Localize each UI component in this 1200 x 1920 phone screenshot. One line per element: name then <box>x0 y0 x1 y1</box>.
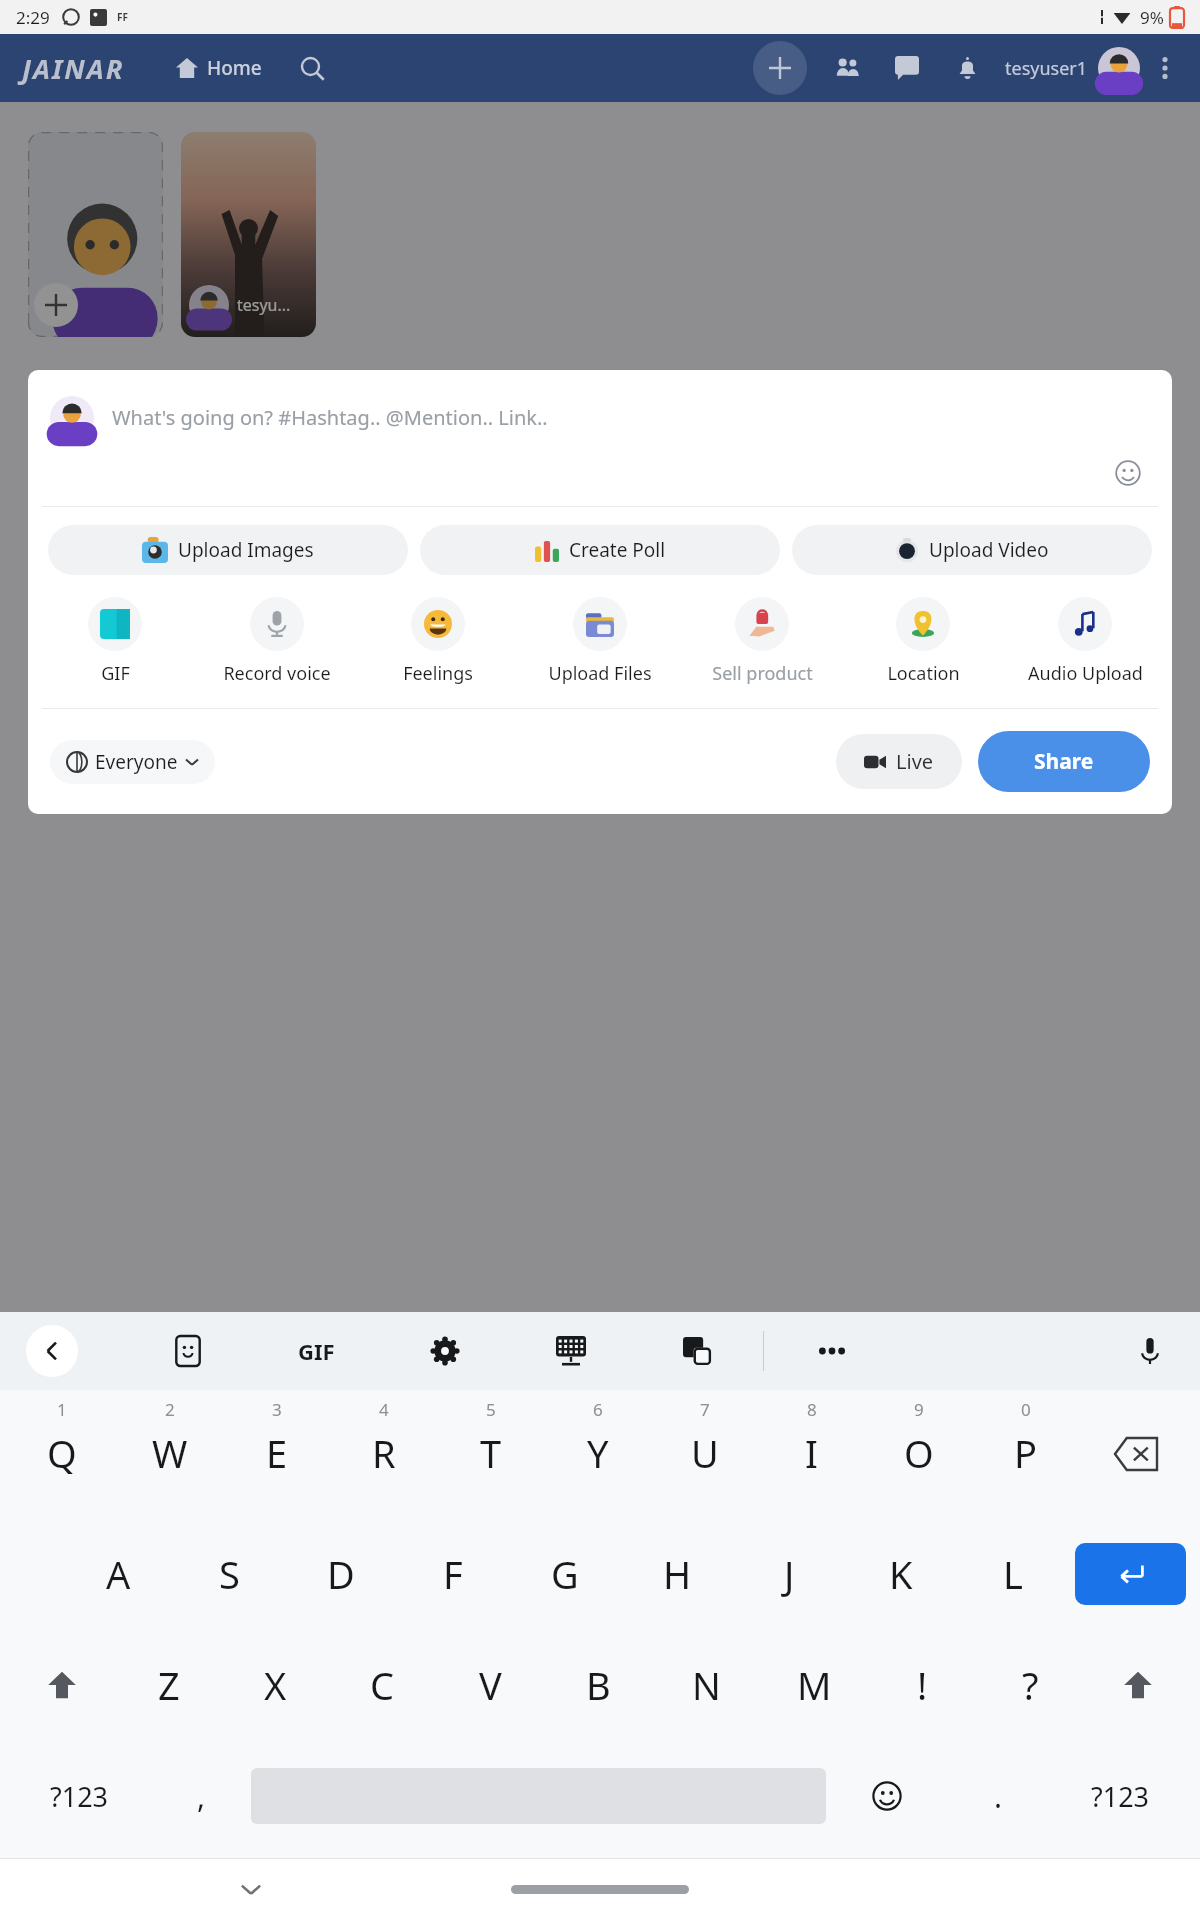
button[interactable]: Z <box>115 1630 222 1740</box>
button[interactable]: H <box>621 1518 733 1630</box>
button[interactable]: Back <box>26 1325 78 1377</box>
button[interactable]: ?123 <box>8 1740 151 1852</box>
staticText: Sell product <box>712 661 813 686</box>
button[interactable]: S <box>174 1518 285 1630</box>
button[interactable]: Stickers <box>164 1327 212 1375</box>
button[interactable]: Share <box>978 731 1150 792</box>
button[interactable]: L <box>957 1518 1069 1630</box>
button[interactable]: Messages <box>885 46 929 90</box>
button[interactable]: Upload Video <box>792 525 1152 575</box>
button[interactable]: 7 <box>651 1390 758 1518</box>
staticText: P <box>1014 1427 1037 1479</box>
staticText: 1 <box>57 1398 67 1421</box>
button[interactable]: What's going on? #Hashtag.. @Mention.. L… <box>50 396 1150 440</box>
staticText: Upload Files <box>548 661 652 686</box>
button[interactable]: F <box>397 1518 509 1630</box>
button[interactable]: 2 <box>116 1390 223 1518</box>
button[interactable]: . <box>948 1740 1048 1852</box>
button[interactable]: Backspace <box>1079 1390 1192 1518</box>
button[interactable]: Home <box>171 49 266 87</box>
staticText: K <box>889 1548 913 1600</box>
staticText: J <box>784 1548 795 1600</box>
button[interactable]: X <box>222 1630 329 1740</box>
button[interactable]: ? <box>976 1630 1084 1740</box>
button[interactable]: 6 <box>544 1390 651 1518</box>
button[interactable]: J <box>733 1518 845 1630</box>
staticText: , <box>197 1776 206 1817</box>
button[interactable]: Upload Files <box>529 593 671 690</box>
button[interactable]: Notifications <box>945 46 989 90</box>
button[interactable]: Shift <box>8 1630 115 1740</box>
staticText: Share <box>1034 747 1094 776</box>
staticText: ! <box>917 1659 928 1711</box>
staticText: ? <box>1022 1659 1039 1711</box>
button[interactable]: Keyboard layout <box>547 1327 595 1375</box>
staticText: E <box>266 1427 288 1479</box>
button[interactable]: Hide keyboard <box>228 1866 274 1912</box>
staticText: GIF <box>101 661 130 686</box>
button[interactable]: tesyuser1 <box>1005 47 1140 89</box>
button[interactable] <box>28 132 163 337</box>
button[interactable]: Audio Upload <box>1014 593 1156 690</box>
button[interactable]: Shift right <box>1084 1630 1192 1740</box>
staticText: 2:29 <box>16 6 50 29</box>
button[interactable]: Feelings <box>367 593 509 690</box>
button[interactable]: 8 <box>758 1390 865 1518</box>
button[interactable]: Friends <box>825 46 869 90</box>
button[interactable]: K <box>845 1518 957 1630</box>
button[interactable]: Translate <box>673 1327 721 1375</box>
button[interactable]: , <box>151 1740 251 1852</box>
button[interactable]: Enter <box>1075 1524 1186 1624</box>
button[interactable]: ! <box>868 1630 976 1740</box>
button[interactable]: Voice input <box>1126 1327 1174 1375</box>
button[interactable]: Emoji <box>826 1740 948 1852</box>
button[interactable]: Create <box>753 41 807 95</box>
staticText: B <box>586 1659 611 1711</box>
button[interactable]: M <box>760 1630 868 1740</box>
staticText: X <box>264 1659 287 1711</box>
staticText: H <box>663 1548 692 1600</box>
button[interactable]: Live <box>836 734 962 789</box>
button[interactable]: A <box>63 1518 174 1630</box>
button[interactable]: 5 <box>437 1390 544 1518</box>
button[interactable]: tesyu... <box>181 132 316 337</box>
button[interactable]: Upload Images <box>48 525 408 575</box>
button[interactable]: Location <box>852 593 994 690</box>
button[interactable]: Home gesture <box>511 1885 689 1894</box>
staticText: Record voice <box>223 661 331 686</box>
button[interactable]: C <box>329 1630 436 1740</box>
staticText: Y <box>587 1427 609 1479</box>
button[interactable]: B <box>544 1630 652 1740</box>
staticText: 4 <box>379 1398 389 1421</box>
staticText: 0 <box>1021 1398 1031 1421</box>
button[interactable]: 0 <box>972 1390 1079 1518</box>
staticText: S <box>219 1548 240 1600</box>
button[interactable]: Record voice <box>206 593 348 690</box>
button[interactable]: JAINAR <box>22 50 125 87</box>
button[interactable]: G <box>509 1518 621 1630</box>
button[interactable]: 9 <box>865 1390 972 1518</box>
button[interactable]: 4 <box>330 1390 437 1518</box>
staticText: 7 <box>700 1398 710 1421</box>
button[interactable]: More options <box>1148 51 1182 85</box>
button[interactable]: Search <box>292 48 332 88</box>
button[interactable]: GIF <box>44 593 186 690</box>
staticText: . <box>994 1776 1003 1817</box>
staticText: M <box>797 1659 832 1711</box>
button[interactable]: V <box>436 1630 544 1740</box>
button[interactable]: Everyone <box>50 740 215 784</box>
button[interactable]: More <box>808 1327 856 1375</box>
button[interactable]: Sell product <box>691 593 833 690</box>
button[interactable]: Emoji <box>1108 453 1148 493</box>
button[interactable]: ?123 <box>1048 1740 1192 1852</box>
button[interactable]: 3 <box>223 1390 330 1518</box>
button[interactable]: Create Poll <box>420 525 780 575</box>
button[interactable]: GIF <box>290 1328 343 1374</box>
button[interactable]: D <box>285 1518 397 1630</box>
button[interactable]: N <box>652 1630 760 1740</box>
button[interactable]: Settings <box>421 1327 469 1375</box>
staticText: Audio Upload <box>1028 661 1143 686</box>
staticText: Feelings <box>403 661 473 686</box>
button[interactable]: 1 <box>8 1390 116 1518</box>
